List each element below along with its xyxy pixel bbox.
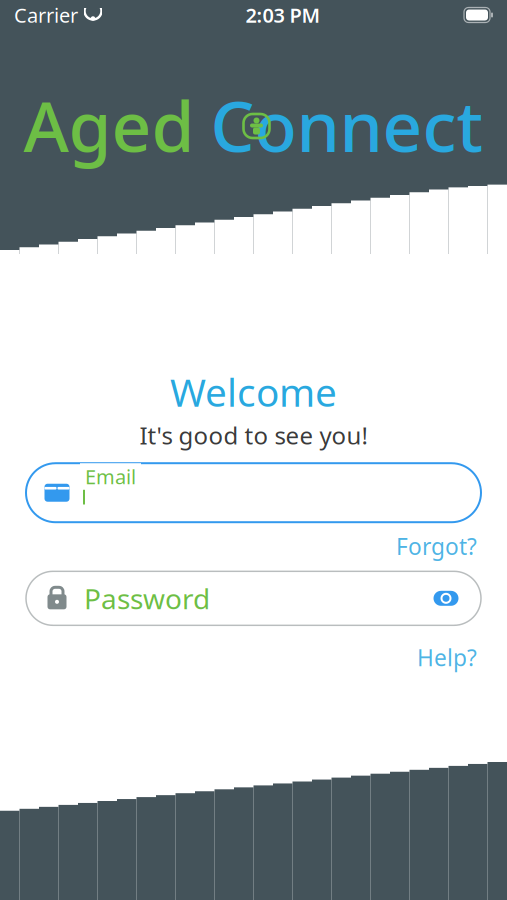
staticText: Aged	[23, 79, 194, 171]
staticText: Help?	[417, 642, 477, 672]
staticText: Connect	[210, 79, 483, 171]
staticText: Email	[85, 463, 136, 490]
button[interactable]: Email	[26, 463, 481, 522]
staticText: It's good to see you!	[139, 419, 367, 451]
staticText: Welcome	[170, 366, 337, 417]
button[interactable]: Password	[26, 571, 481, 625]
button[interactable]: Help?	[413, 639, 481, 675]
staticText: Forgot?	[396, 531, 477, 561]
staticText: 2:03 PM	[245, 2, 320, 28]
button[interactable]: Forgot?	[392, 528, 481, 564]
staticText: Carrier	[14, 2, 78, 28]
staticText: Password	[84, 580, 210, 617]
